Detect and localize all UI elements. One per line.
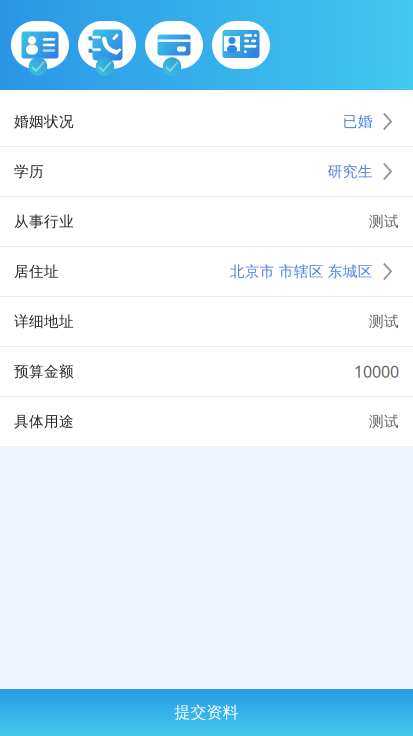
button[interactable]: 详细地址 <box>0 297 413 347</box>
button[interactable]: 婚姻状况 <box>0 97 413 147</box>
staticText: 具体用途 <box>14 412 74 430</box>
staticText: 详细地址 <box>14 312 74 330</box>
button[interactable]: 预算金额 <box>0 347 413 397</box>
staticText: 测试 <box>369 412 399 430</box>
button[interactable]: 学历 <box>0 147 413 197</box>
staticText: 婚姻状况 <box>14 112 74 130</box>
button[interactable]: 提交资料 <box>0 689 413 736</box>
staticText: 学历 <box>14 162 44 180</box>
staticText: 测试 <box>369 312 399 330</box>
button[interactable]: 从事行业 <box>0 197 413 247</box>
staticText: 从事行业 <box>14 212 74 230</box>
staticText: 已婚 <box>343 112 373 130</box>
staticText: 研究生 <box>328 162 373 180</box>
staticText: 10000 <box>354 361 399 382</box>
staticText: 测试 <box>369 212 399 230</box>
staticText: 提交资料 <box>174 703 238 722</box>
staticText: 北京市 市辖区 东城区 <box>230 262 373 280</box>
button[interactable]: 具体用途 <box>0 397 413 447</box>
staticText: 预算金额 <box>14 362 74 380</box>
staticText: 居住址 <box>14 262 59 280</box>
button[interactable]: 居住址 <box>0 247 413 297</box>
